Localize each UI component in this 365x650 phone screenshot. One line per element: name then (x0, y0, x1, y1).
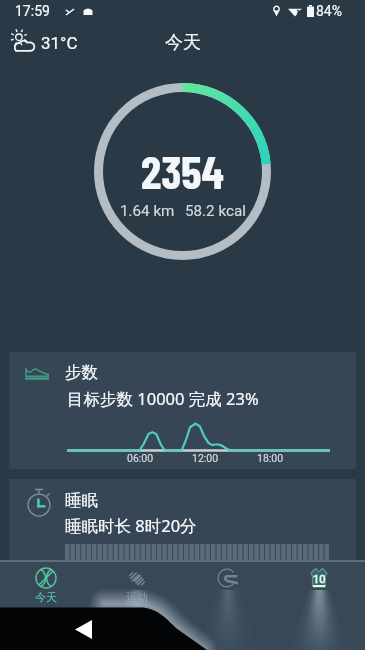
staticText: 58.2 kcal (185, 202, 246, 220)
button[interactable]: 今天 (165, 31, 201, 54)
staticText: 12:00 (192, 452, 219, 464)
button[interactable]: 球衣 (308, 567, 330, 589)
button[interactable]: 运动 (126, 567, 148, 589)
button[interactable]: 31°C (41, 33, 78, 53)
staticText: 2354 (141, 143, 224, 198)
staticText: 运动 (126, 590, 148, 604)
staticText: 步数 (65, 362, 98, 383)
staticText: 06:00 (127, 452, 154, 464)
staticText: 目标步数 10000 完成 23% (67, 387, 259, 410)
staticText: 10 (313, 573, 326, 586)
staticText: 睡眠 (65, 490, 98, 511)
button[interactable]: 鞋 (217, 567, 239, 589)
staticText: 今天 (35, 590, 57, 604)
staticText: 睡眠时长 8时20分 (65, 514, 197, 537)
staticText: 18:00 (257, 452, 284, 464)
staticText: 1.64 km (120, 202, 175, 220)
staticText: 84% (316, 3, 342, 19)
button[interactable]: 睡眠 (9, 479, 356, 560)
staticText: 17:59 (15, 3, 50, 19)
button[interactable]: 步数 (9, 352, 356, 469)
button[interactable]: 今天 (35, 567, 57, 589)
